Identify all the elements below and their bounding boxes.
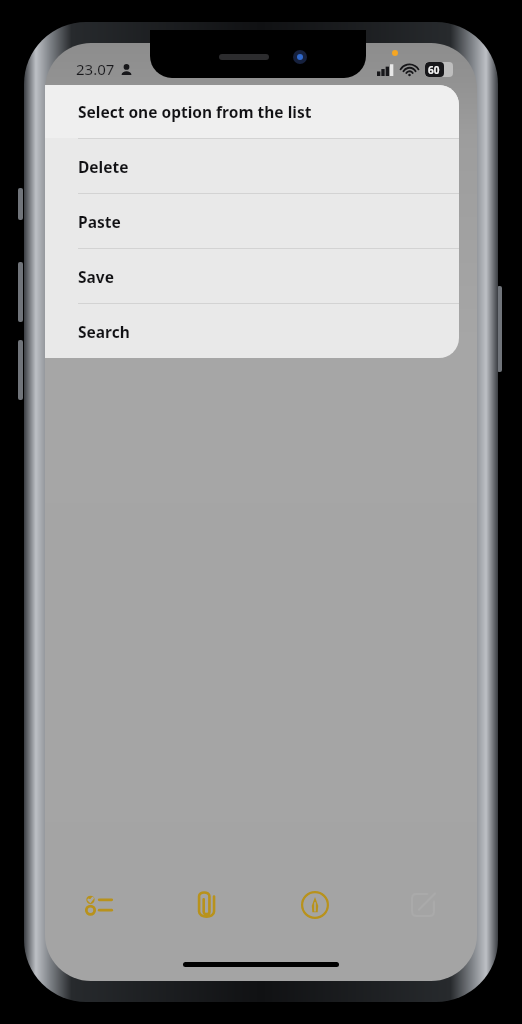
staticText: Search bbox=[78, 321, 130, 342]
staticText: Delete bbox=[78, 156, 129, 177]
button[interactable]: Attach file bbox=[153, 881, 261, 929]
button[interactable]: Save bbox=[45, 249, 459, 303]
staticText: 23.07 bbox=[76, 59, 115, 79]
button[interactable]: Draw bbox=[261, 881, 369, 929]
staticText: Select one option from the list bbox=[78, 101, 312, 122]
staticText: Paste bbox=[78, 211, 121, 232]
button[interactable]: Search bbox=[45, 304, 459, 358]
staticText: 60 bbox=[428, 63, 440, 77]
button[interactable]: Checklist bbox=[45, 881, 153, 929]
button[interactable]: Delete bbox=[45, 139, 459, 193]
staticText: Save bbox=[78, 266, 114, 287]
button[interactable]: Paste bbox=[45, 194, 459, 248]
